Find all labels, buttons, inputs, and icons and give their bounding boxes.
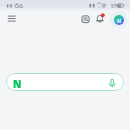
button[interactable]: Search <box>6 73 124 91</box>
button[interactable]: Notifications <box>95 13 106 24</box>
button[interactable]: Menu <box>4 12 19 27</box>
staticText: 57% <box>111 3 121 9</box>
button[interactable]: Profile <box>108 9 130 31</box>
staticText: N <box>117 17 122 24</box>
button[interactable]: Mail <box>81 15 89 23</box>
staticText: N <box>13 77 22 91</box>
